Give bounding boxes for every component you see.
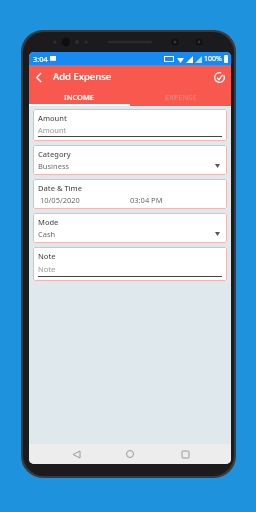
- button[interactable]: Home: [122, 446, 138, 462]
- button[interactable]: Note: [33, 247, 227, 281]
- button[interactable]: EXPENSE: [130, 88, 231, 106]
- button[interactable]: Save: [210, 68, 228, 86]
- staticText: 3:04: [33, 54, 48, 64]
- staticText: Cash: [38, 229, 215, 239]
- button[interactable]: Back: [29, 67, 49, 87]
- staticText: Date & Time: [38, 183, 83, 193]
- staticText: Amount: [38, 125, 67, 135]
- staticText: Amount: [38, 113, 67, 123]
- staticText: EXPENSE: [165, 92, 197, 102]
- staticText: Note: [38, 251, 56, 261]
- staticText: 100%: [204, 54, 222, 64]
- staticText: Mode: [38, 217, 59, 227]
- staticText: 10/05/2020: [40, 195, 130, 205]
- staticText: Business: [38, 161, 215, 171]
- button[interactable]: Back: [68, 446, 84, 462]
- staticText: INCOME: [64, 92, 95, 102]
- button[interactable]: INCOME: [29, 88, 130, 106]
- button[interactable]: Category: [33, 145, 227, 175]
- button[interactable]: Amount: [33, 109, 227, 141]
- staticText: Note: [38, 264, 56, 274]
- staticText: Category: [38, 149, 71, 159]
- button[interactable]: Mode: [33, 213, 227, 243]
- button[interactable]: Recents: [177, 446, 193, 462]
- button[interactable]: Date & Time: [33, 179, 227, 209]
- staticText: Add Expense: [53, 70, 112, 83]
- staticText: 03:04 PM: [130, 195, 222, 205]
